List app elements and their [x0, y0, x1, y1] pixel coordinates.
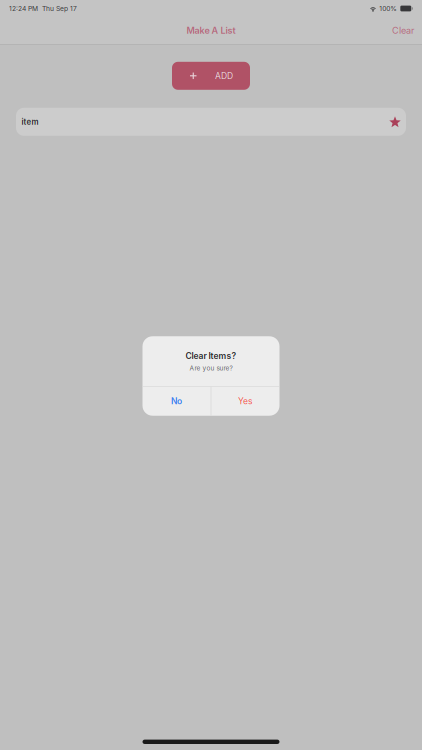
staticText: No [171, 396, 182, 406]
staticText: Thu Sep 17 [42, 4, 77, 13]
staticText: Make A List [186, 25, 235, 36]
button[interactable]: item [16, 108, 406, 136]
staticText: ADD [215, 71, 233, 81]
button[interactable]: Yes [211, 387, 280, 416]
staticText: 12:24 PM [9, 4, 38, 13]
staticText: 100% [379, 4, 397, 13]
button[interactable]: No [142, 387, 211, 416]
staticText: Clear Items? [185, 351, 236, 361]
staticText: Are you sure? [189, 364, 232, 372]
button[interactable]: Clear [383, 19, 422, 42]
staticText: Clear [392, 25, 414, 36]
staticText: Yes [238, 396, 253, 406]
staticText: item [21, 117, 38, 126]
button[interactable]: ADD [172, 62, 250, 90]
